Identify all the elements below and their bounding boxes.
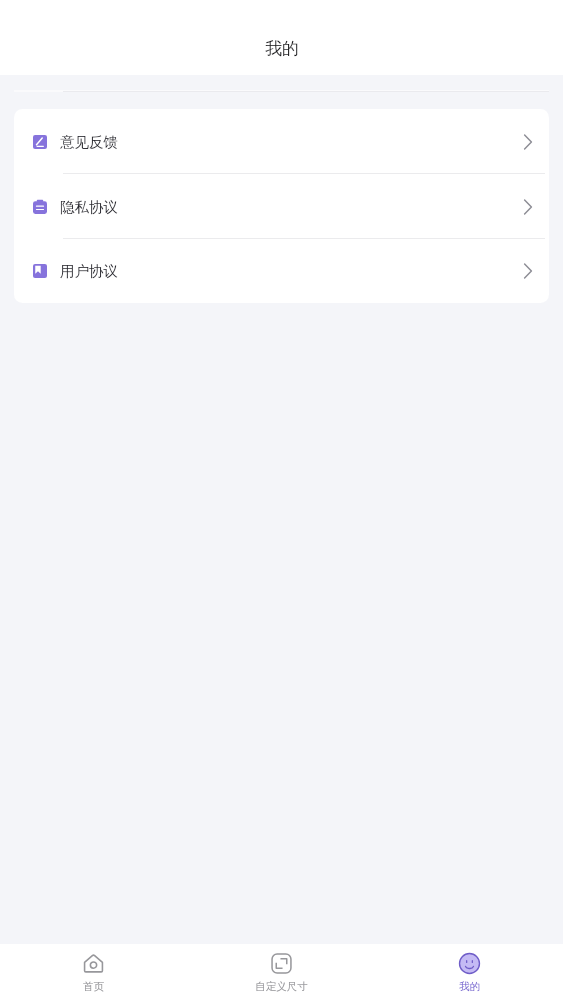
staticText: 隐私协议	[60, 198, 118, 216]
staticText: 自定义尺寸	[255, 980, 308, 993]
button[interactable]: Custom size	[187, 944, 375, 1002]
button[interactable]: 意见反馈	[14, 109, 549, 174]
staticText: 意见反馈	[60, 133, 118, 151]
staticText: 我的	[265, 38, 299, 59]
staticText: 用户协议	[60, 262, 118, 280]
button[interactable]: 隐私协议	[14, 174, 549, 239]
button[interactable]: Mine	[375, 944, 563, 1002]
button[interactable]: Home	[0, 944, 187, 1002]
staticText: 首页	[83, 980, 104, 993]
button[interactable]: 用户协议	[14, 239, 549, 303]
staticText: 我的	[459, 980, 480, 993]
